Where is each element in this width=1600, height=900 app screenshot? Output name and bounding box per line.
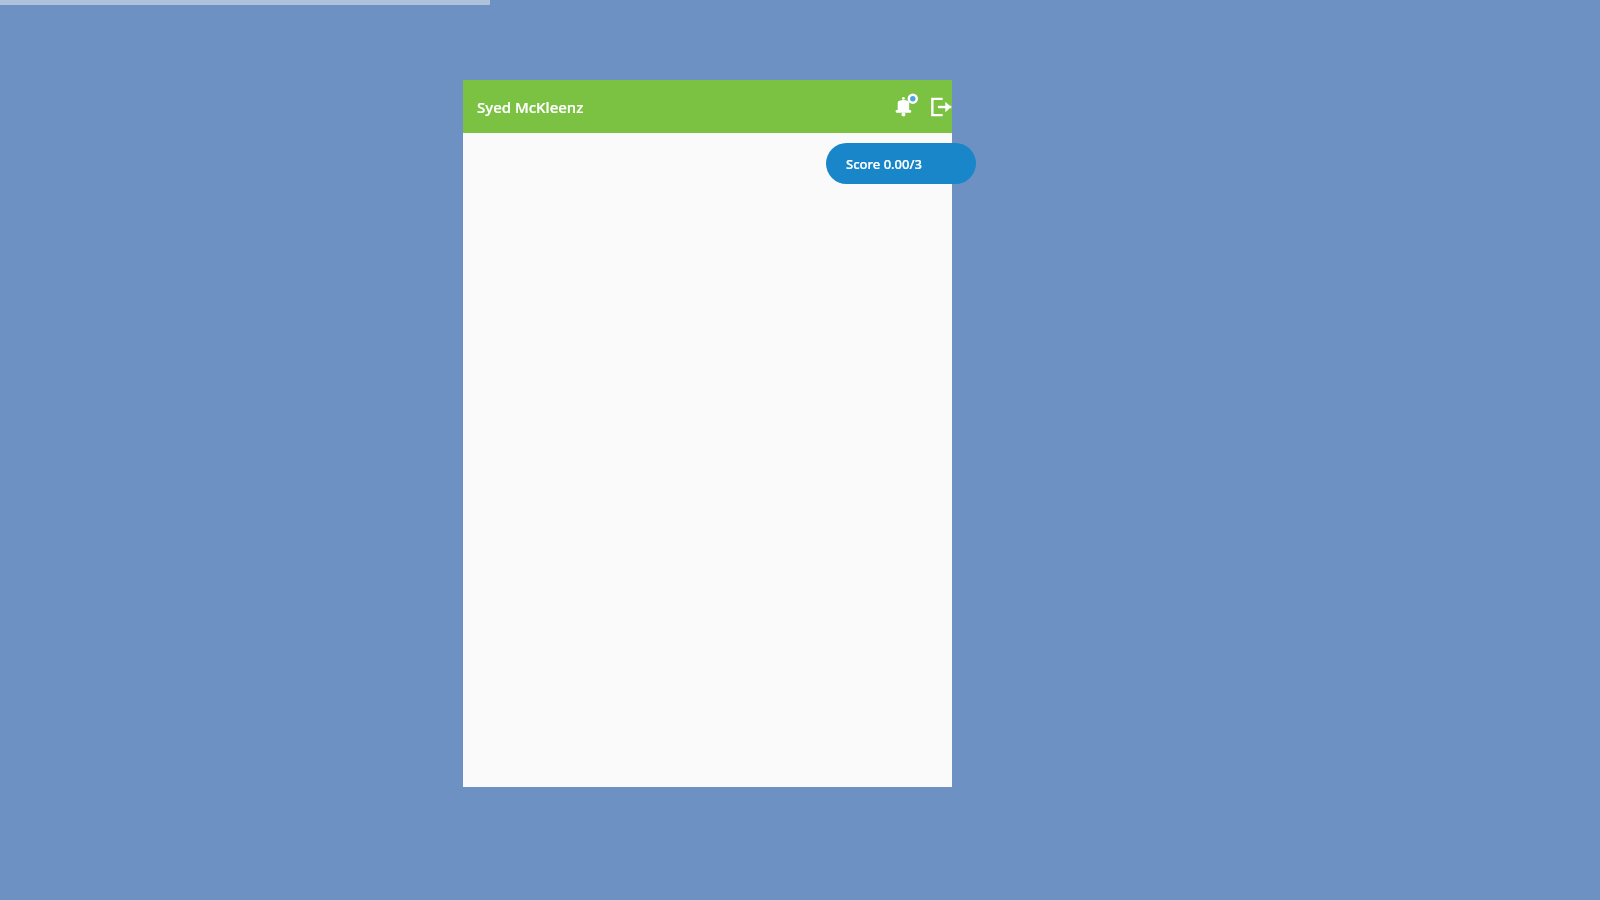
staticText: Syed McKleenz: [477, 97, 584, 117]
button[interactable]: Notifications: [888, 90, 922, 124]
staticText: Score 0.00/3: [846, 155, 922, 173]
button[interactable]: Log out: [924, 90, 958, 124]
button[interactable]: Score 0.00/3: [826, 143, 976, 184]
